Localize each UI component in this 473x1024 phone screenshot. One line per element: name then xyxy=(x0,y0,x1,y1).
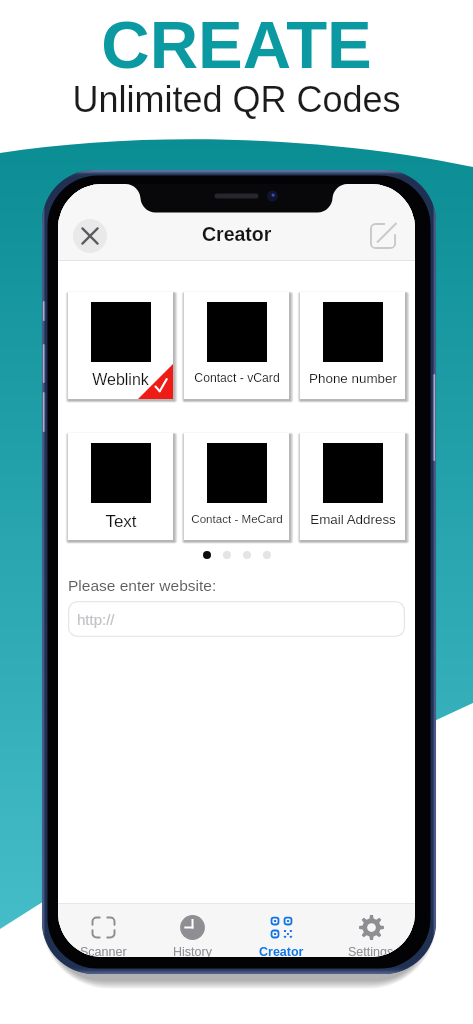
staticText: Please enter website: xyxy=(68,577,217,594)
staticText: Contact - MeCard xyxy=(191,512,283,525)
staticText: Text xyxy=(105,512,137,531)
staticText: Creator xyxy=(259,945,304,957)
staticText: Contact - vCard xyxy=(194,371,280,385)
button[interactable]: Contact - vCard xyxy=(184,292,289,399)
button[interactable]: Text xyxy=(68,433,173,540)
button[interactable]: History xyxy=(148,903,237,957)
button[interactable]: Creator xyxy=(237,903,326,957)
staticText: Email Address xyxy=(310,512,396,527)
staticText: http:// xyxy=(77,611,115,628)
staticText: Scanner xyxy=(80,945,127,957)
staticText: Unlimited QR Codes xyxy=(0,79,473,119)
button[interactable]: Weblink xyxy=(68,292,173,399)
button[interactable]: Contact - MeCard xyxy=(184,433,289,540)
staticText: Weblink xyxy=(92,371,149,389)
button[interactable]: Scanner xyxy=(58,903,148,957)
staticText: Settings xyxy=(348,945,394,957)
staticText: History xyxy=(173,945,212,957)
button[interactable]: Email Address xyxy=(300,433,405,540)
button[interactable]: http:// xyxy=(68,601,405,637)
button[interactable]: Edit xyxy=(370,223,396,249)
button[interactable]: Close xyxy=(73,219,107,253)
button[interactable]: Phone number xyxy=(300,292,405,399)
button[interactable]: Settings xyxy=(326,903,415,957)
staticText: CREATE xyxy=(0,7,473,82)
staticText: Phone number xyxy=(309,371,397,386)
staticText: Creator xyxy=(202,223,272,245)
